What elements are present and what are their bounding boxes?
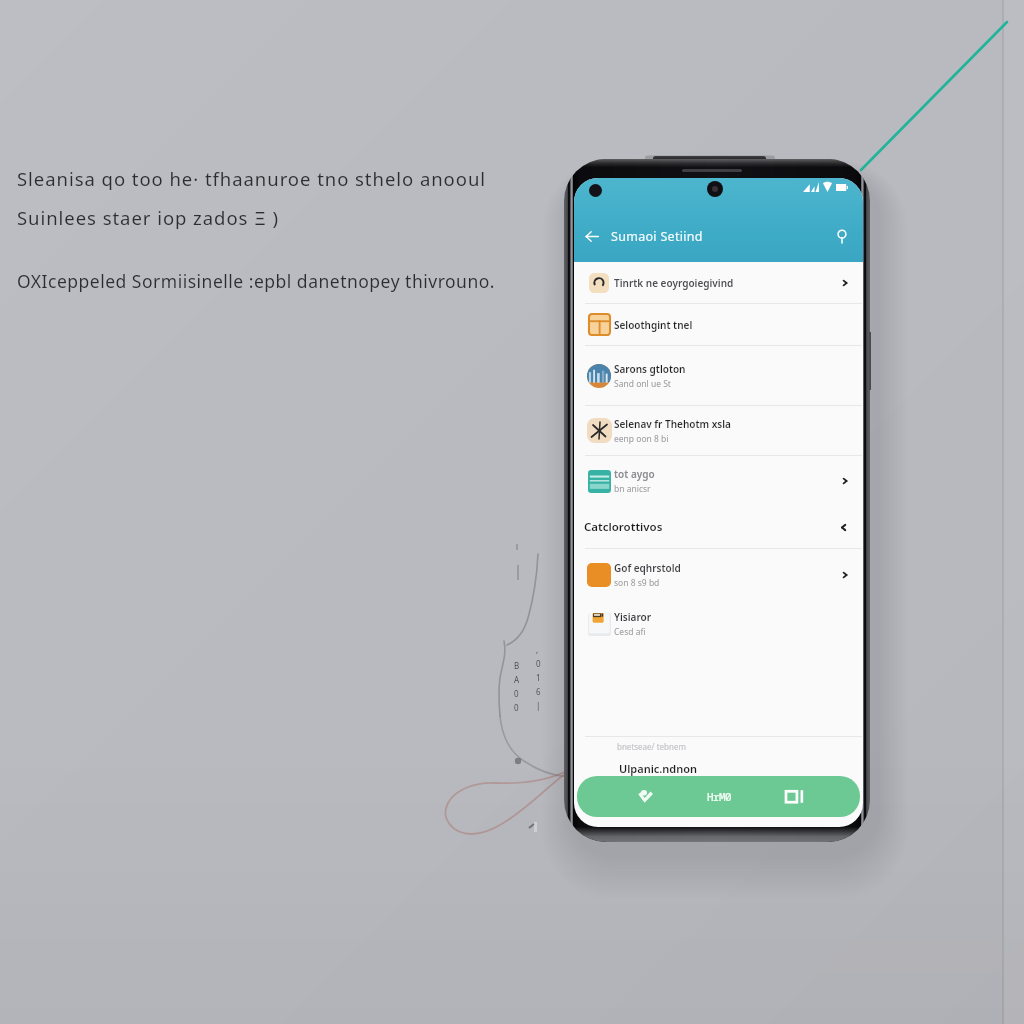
staticText: tot aygo xyxy=(614,467,655,481)
button[interactable]: tot aygo xyxy=(574,456,863,506)
staticText: HrM0 xyxy=(707,789,731,804)
button[interactable]: Seloothgint tnel xyxy=(574,304,863,345)
staticText: son 8 s9 bd xyxy=(614,577,660,589)
staticText: bnetseae/ tebnem xyxy=(617,741,686,752)
staticText: Sarons gtloton xyxy=(614,362,686,376)
staticText: OXIceppeled Sormiisinelle :epbl danetnop… xyxy=(17,269,496,293)
button[interactable]: Gof eqhrstold xyxy=(574,549,863,600)
button[interactable]: Ulpanic.ndnon xyxy=(574,761,863,776)
staticText: B A 0 0 xyxy=(514,660,520,713)
staticText: Suinlees staer iop zados Ξ ) xyxy=(17,205,279,230)
staticText: Ulpanic.ndnon xyxy=(619,761,698,776)
staticText: Sumaoi Setiind xyxy=(611,228,703,245)
staticText: bn anicsr xyxy=(614,483,651,495)
button[interactable]: Selenav fr Thehotm xsla xyxy=(574,406,863,455)
button[interactable]: Tinrtk ne eoyrgoiegivind xyxy=(574,262,863,303)
button[interactable]: Back xyxy=(576,221,606,251)
button[interactable]: bnetseae/ tebnem xyxy=(574,741,863,752)
staticText: Sand onl ue St xyxy=(614,378,671,390)
button[interactable]: Catclorottivos xyxy=(574,506,863,548)
staticText: Seloothgint tnel xyxy=(614,318,693,332)
button[interactable]: HrM0 xyxy=(672,776,766,817)
staticText: Catclorottivos xyxy=(584,519,663,535)
staticText: Cesd afi xyxy=(614,626,646,638)
button[interactable]: Favorites xyxy=(577,776,672,817)
button[interactable]: Favorites xyxy=(577,776,860,817)
staticText: , 0 1 6 | xyxy=(536,644,541,711)
staticText: eenp oon 8 bi xyxy=(614,433,669,445)
staticText: Sleanisa qo too he· tfhaanuroe tno sthel… xyxy=(17,166,486,191)
staticText: Gof eqhrstold xyxy=(614,561,681,575)
button[interactable]: Yisiaror xyxy=(574,600,863,648)
button[interactable]: Sarons gtloton xyxy=(574,346,863,405)
staticText: Yisiaror xyxy=(614,610,652,624)
button[interactable]: Library xyxy=(766,776,860,817)
button[interactable]: Search xyxy=(828,222,856,250)
staticText: Tinrtk ne eoyrgoiegivind xyxy=(614,276,734,290)
staticText: Selenav fr Thehotm xsla xyxy=(614,417,731,431)
